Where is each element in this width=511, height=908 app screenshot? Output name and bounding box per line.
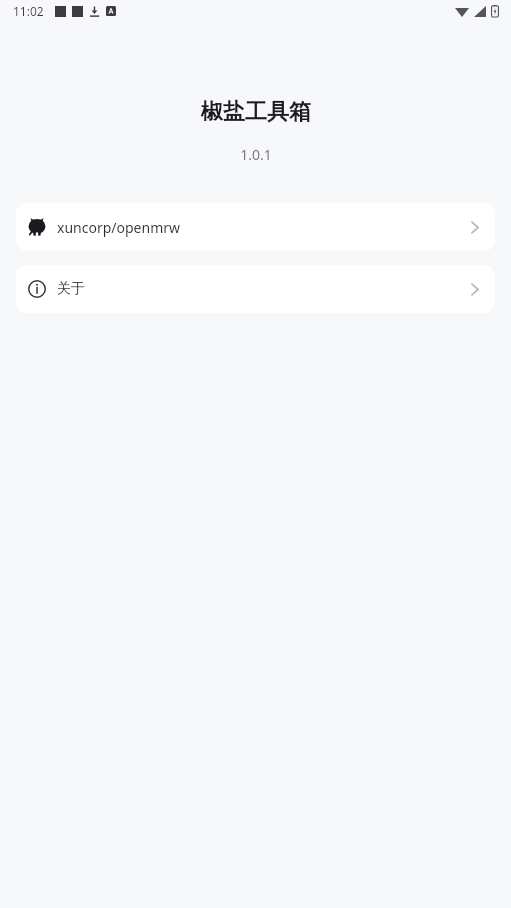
button[interactable]: GitHub repository xyxy=(16,203,495,251)
staticText: 关于 xyxy=(57,280,85,298)
staticText: 1.0.1 xyxy=(240,145,272,164)
staticText: xuncorp/openmrw xyxy=(57,218,181,237)
button[interactable]: About xyxy=(16,265,495,313)
staticText: 椒盐工具箱 xyxy=(201,98,311,126)
staticText: 11:02 xyxy=(13,3,44,19)
